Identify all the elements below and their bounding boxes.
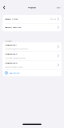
button[interactable]: Operation 1 xyxy=(2,42,61,51)
button[interactable]: Default position xyxy=(2,23,61,31)
staticText: Default position xyxy=(5,26,21,29)
staticText: Edit xyxy=(57,6,61,9)
staticText: Operation 2 xyxy=(5,52,17,55)
staticText: Add action xyxy=(9,71,19,74)
button[interactable]: Repeat times xyxy=(2,15,61,23)
staticText: Operation 1 xyxy=(5,43,17,46)
button[interactable]: Add action xyxy=(2,70,61,76)
button[interactable]: Edit xyxy=(53,2,64,13)
staticText: Repeat until obstacle hit xyxy=(5,66,23,68)
staticText: Condition xyxy=(5,40,12,42)
button[interactable]: Back xyxy=(0,2,9,13)
staticText: Turn right 90 degrees now xyxy=(5,57,25,59)
button[interactable]: Operation 2 xyxy=(2,51,61,60)
staticText: Repeat times xyxy=(5,18,18,20)
button[interactable]: Operation 3 xyxy=(2,60,61,69)
staticText: Program xyxy=(28,6,36,9)
staticText: Twice xyxy=(50,18,56,20)
staticText: Operation 3 xyxy=(5,61,17,64)
staticText: Move forward 10 steps here xyxy=(5,48,28,50)
